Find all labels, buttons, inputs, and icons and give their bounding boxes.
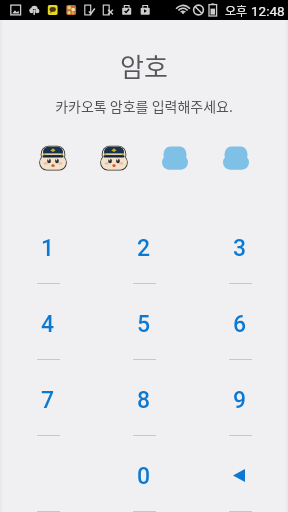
button[interactable]: 2 <box>96 208 192 284</box>
button[interactable]: 6 <box>192 284 288 360</box>
staticText: 오후 <box>225 2 248 19</box>
button[interactable]: 0 <box>96 436 192 512</box>
button[interactable]: 1 <box>0 208 96 284</box>
staticText: 3 <box>233 235 247 262</box>
button[interactable]: 7 <box>0 360 96 436</box>
other: Backspace <box>233 469 245 482</box>
staticText: 8 <box>137 387 151 414</box>
staticText: 카카오톡 암호를 입력해주세요. <box>0 96 288 116</box>
button[interactable]: 4 <box>0 284 96 360</box>
staticText: 9 <box>233 387 247 414</box>
button[interactable]: 5 <box>96 284 192 360</box>
staticText: 암호 <box>0 47 288 85</box>
button[interactable]: 3 <box>192 208 288 284</box>
staticText: 0 <box>137 463 151 490</box>
staticText: 2 <box>137 235 151 262</box>
staticText: 4 <box>41 311 55 338</box>
staticText: 12:48 <box>251 3 285 19</box>
button[interactable]: Backspace <box>192 436 288 512</box>
button[interactable]: 9 <box>192 360 288 436</box>
staticText: 5 <box>137 311 151 338</box>
staticText: 7 <box>41 387 55 414</box>
staticText: 1 <box>41 235 55 262</box>
staticText: 6 <box>233 311 247 338</box>
button[interactable]: 8 <box>96 360 192 436</box>
